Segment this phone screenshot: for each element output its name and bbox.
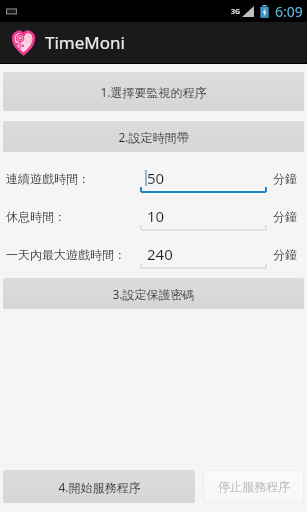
button[interactable]: 3.設定保護密碼 <box>3 278 304 309</box>
staticText: 10 <box>147 206 165 226</box>
staticText: 1.選擇要監視的程序 <box>100 84 207 100</box>
staticText: 3.設定保護密碼 <box>112 286 195 302</box>
staticText: 3G <box>231 7 241 17</box>
staticText: 2.設定時間帶 <box>118 129 189 145</box>
button[interactable]: 4.開始服務程序 <box>3 470 195 503</box>
staticText: 停止服務程序 <box>218 479 290 494</box>
button[interactable]: 停止服務程序 <box>203 470 304 503</box>
staticText: 240 <box>147 244 173 264</box>
staticText: 分鐘 <box>273 247 297 262</box>
button[interactable]: 240 <box>138 236 269 272</box>
staticText: 分鐘 <box>273 209 297 224</box>
staticText: 休息時間： <box>6 209 66 224</box>
staticText: 連續遊戲時間： <box>6 171 90 186</box>
button[interactable]: 10 <box>138 198 269 234</box>
staticText: 一天內最大遊戲時間： <box>6 247 126 262</box>
staticText: 分鐘 <box>273 171 297 186</box>
staticText: 6:09 <box>275 2 303 21</box>
staticText: TimeMoni <box>45 31 125 54</box>
staticText: 4.開始服務程序 <box>58 479 141 495</box>
staticText: 50 <box>147 168 165 188</box>
button[interactable]: 1.選擇要監視的程序 <box>3 72 304 111</box>
button[interactable]: 2.設定時間帶 <box>3 121 304 152</box>
button[interactable]: 50 <box>138 160 269 196</box>
